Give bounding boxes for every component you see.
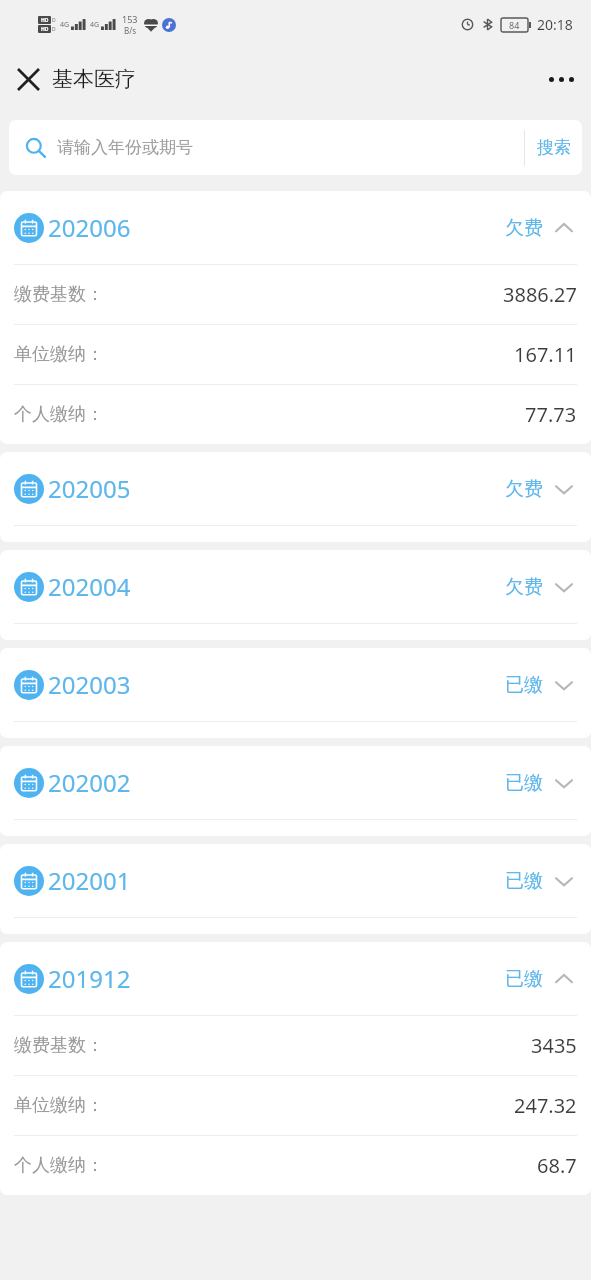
staticText: 247.32	[514, 1092, 577, 1119]
button[interactable]: 202002	[0, 746, 591, 819]
staticText: 202002	[48, 766, 131, 799]
staticText: 已缴	[505, 967, 543, 991]
staticText: 欠费	[505, 216, 543, 240]
button[interactable]: More options	[539, 57, 583, 101]
staticText: 单位缴纳：	[14, 1094, 104, 1117]
button[interactable]: Collapse	[551, 215, 577, 241]
staticText: B/s	[124, 25, 137, 36]
staticText: 单位缴纳：	[14, 343, 104, 366]
staticText: 请输入年份或期号	[57, 137, 193, 158]
staticText: 缴费基数：	[14, 1034, 104, 1057]
staticText: 缴费基数：	[14, 283, 104, 306]
staticText: 4G	[90, 20, 100, 30]
button[interactable]: Expand	[551, 574, 577, 600]
staticText: 202001	[48, 864, 131, 897]
staticText: 已缴	[505, 673, 543, 697]
button[interactable]: 搜索	[525, 120, 582, 175]
button[interactable]: Collapse	[551, 966, 577, 992]
staticText: 已缴	[505, 771, 543, 795]
staticText: 个人缴纳：	[14, 1154, 104, 1177]
button[interactable]: Expand	[551, 476, 577, 502]
staticText: 个人缴纳：	[14, 403, 104, 426]
staticText: HD	[41, 26, 49, 33]
staticText: 202005	[48, 472, 131, 505]
staticText: 68.7	[537, 1152, 577, 1179]
staticText: 167.11	[514, 341, 577, 368]
staticText: 已缴	[505, 869, 543, 893]
staticText: 84	[509, 19, 520, 31]
button[interactable]: Expand	[551, 672, 577, 698]
button[interactable]: Expand	[551, 868, 577, 894]
button[interactable]: 202001	[0, 844, 591, 917]
button[interactable]: Expand	[551, 770, 577, 796]
button[interactable]: Close	[6, 57, 50, 101]
button[interactable]: 202004	[0, 550, 591, 623]
staticText: 153	[122, 13, 138, 25]
staticText: D	[52, 26, 56, 33]
staticText: 4G	[60, 20, 70, 30]
button[interactable]: 请输入年份或期号	[9, 137, 524, 158]
button[interactable]: 202003	[0, 648, 591, 721]
staticText: 基本医疗	[52, 66, 136, 92]
staticText: 202003	[48, 668, 131, 701]
staticText: HD	[41, 17, 49, 24]
staticText: 欠费	[505, 575, 543, 599]
staticText: 3886.27	[503, 281, 577, 308]
staticText: 3435	[531, 1032, 577, 1059]
button[interactable]: 201912	[0, 942, 591, 1015]
staticText: 202006	[48, 211, 131, 244]
staticText: 搜索	[537, 137, 571, 158]
button[interactable]: 202006	[0, 191, 591, 264]
button[interactable]: 202005	[0, 452, 591, 525]
staticText: 202004	[48, 570, 131, 603]
staticText: D	[52, 17, 56, 24]
staticText: 20:18	[537, 15, 573, 34]
staticText: 欠费	[505, 477, 543, 501]
staticText: 201912	[48, 962, 131, 995]
staticText: 77.73	[525, 401, 577, 428]
